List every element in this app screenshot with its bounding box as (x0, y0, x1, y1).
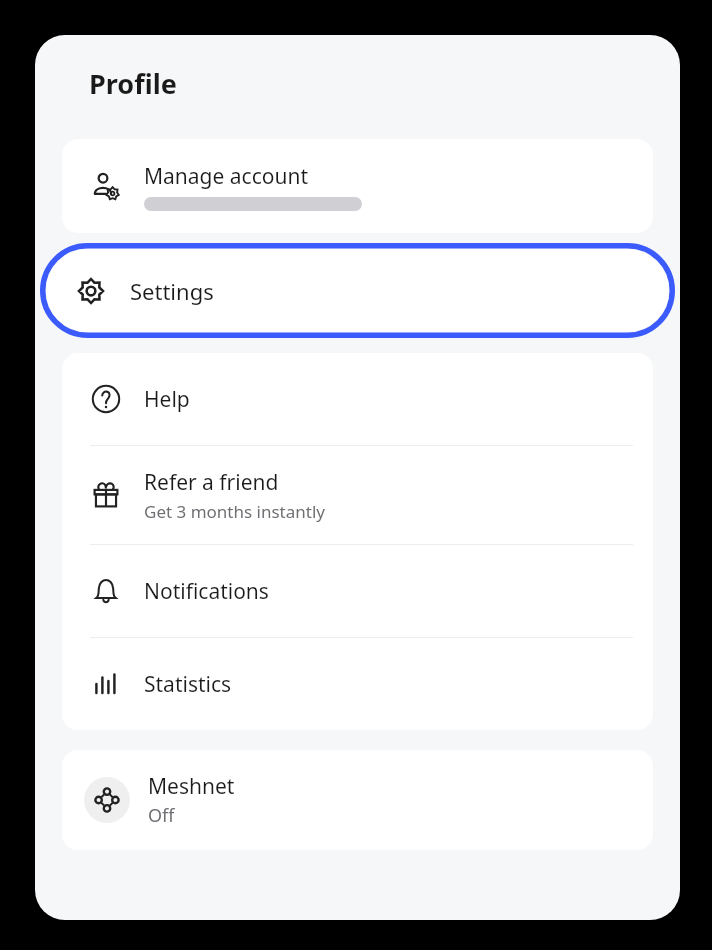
button[interactable]: Help (62, 353, 653, 445)
staticText: Settings (130, 276, 214, 306)
staticText: Meshnet (148, 772, 235, 801)
button[interactable]: Settings (40, 243, 675, 338)
staticText: Statistics (144, 670, 232, 699)
staticText: Off (148, 803, 175, 828)
button[interactable]: Statistics (62, 638, 653, 730)
staticText: Help (144, 385, 190, 414)
staticText: Refer a friend (144, 468, 279, 497)
button[interactable]: Notifications (62, 545, 653, 637)
staticText: Profile (89, 65, 177, 102)
button[interactable]: Refer a friend (62, 446, 653, 544)
staticText: Notifications (144, 577, 269, 606)
staticText: Manage account (144, 162, 308, 191)
staticText: Get 3 months instantly (144, 500, 325, 523)
button[interactable]: Manage account (62, 139, 653, 233)
button[interactable]: Meshnet (62, 750, 653, 850)
